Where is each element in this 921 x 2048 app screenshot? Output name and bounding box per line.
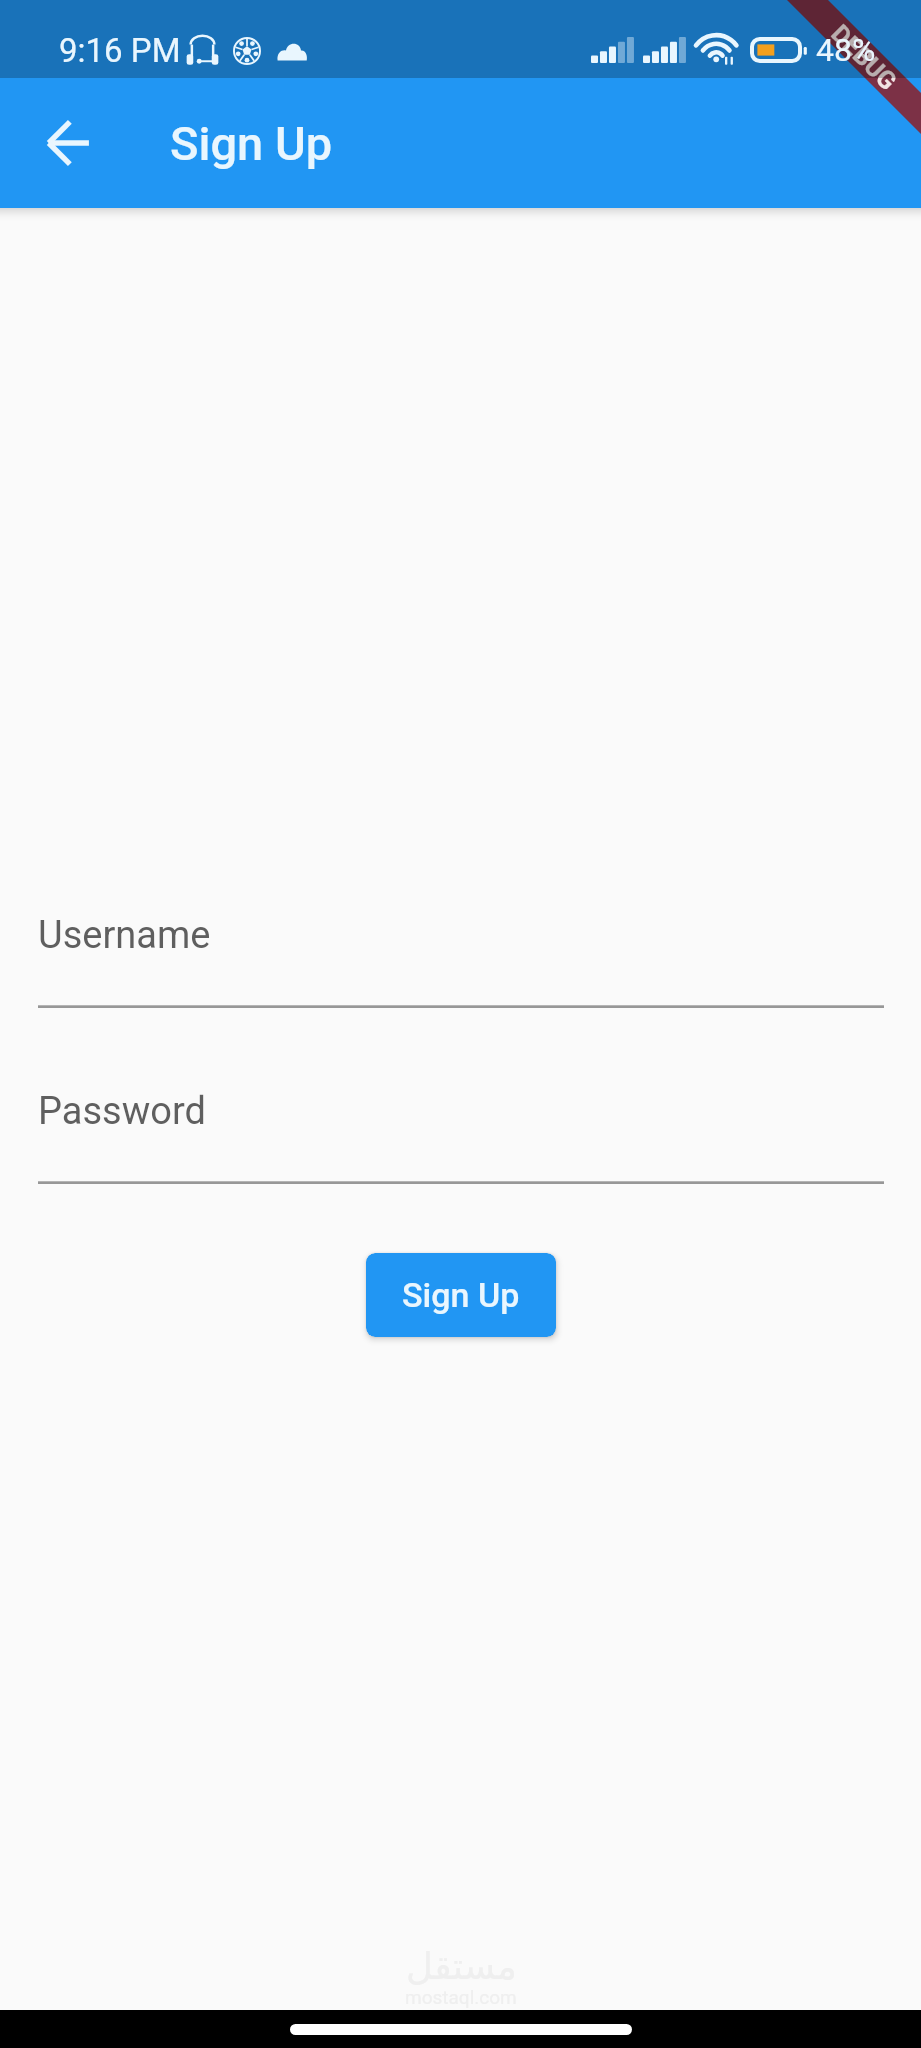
staticText: 9:16 PM bbox=[59, 31, 181, 70]
button[interactable]: Home bbox=[290, 2024, 632, 2035]
staticText: Username bbox=[38, 913, 211, 958]
staticText: 48% bbox=[816, 31, 876, 69]
staticText: مستقل bbox=[406, 1945, 517, 1988]
staticText: mostaql.com bbox=[405, 1986, 517, 2008]
button[interactable]: Back bbox=[24, 99, 112, 187]
staticText: DEBUG bbox=[825, 19, 903, 96]
button[interactable]: Sign Up bbox=[366, 1253, 556, 1337]
staticText: Sign Up bbox=[170, 116, 333, 171]
staticText: Password bbox=[38, 1089, 206, 1134]
staticText: Sign Up bbox=[402, 1275, 520, 1315]
